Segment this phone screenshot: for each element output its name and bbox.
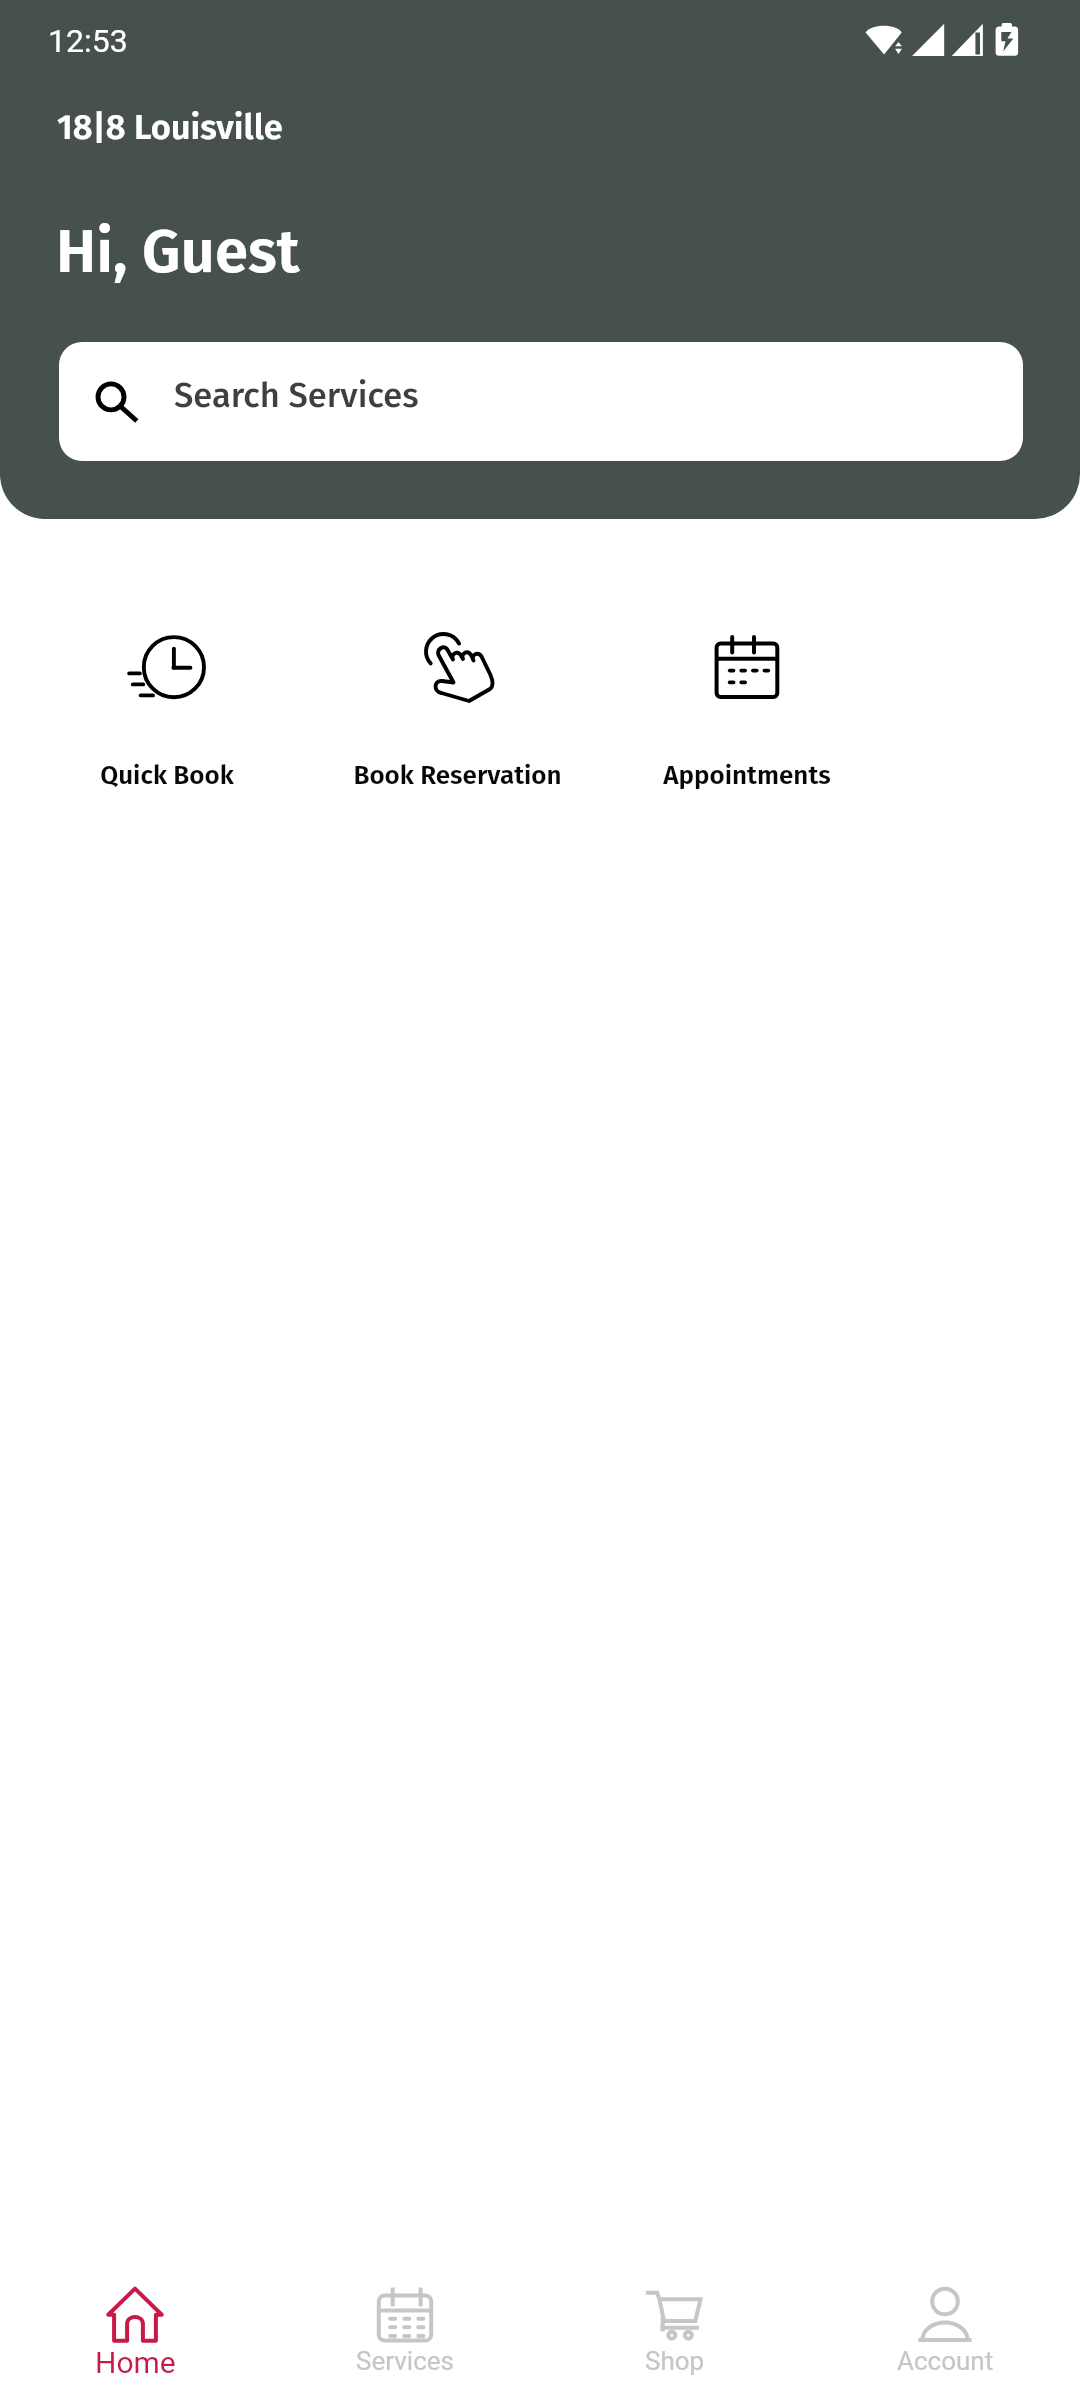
staticText: Home <box>95 2345 176 2380</box>
staticText: Appointments <box>663 760 831 791</box>
staticText: 18|8 Louisville <box>57 107 283 148</box>
button[interactable]: Services <box>270 2240 540 2380</box>
staticText: Shop <box>645 2346 705 2376</box>
staticText: Search Services <box>174 375 419 416</box>
staticText: Hi, Guest <box>56 216 300 288</box>
button[interactable]: Shop <box>540 2240 810 2380</box>
staticText: Book Reservation <box>353 760 562 791</box>
button[interactable]: Book Reservation <box>312 600 602 741</box>
staticText: Services <box>356 2346 454 2376</box>
button[interactable]: Quick Book <box>22 600 312 741</box>
staticText: Quick Book <box>100 760 234 791</box>
button[interactable]: Search Services <box>59 342 1023 461</box>
button[interactable]: Appointments <box>602 600 892 741</box>
button[interactable]: Account <box>810 2240 1080 2380</box>
button[interactable]: Home <box>0 2240 270 2385</box>
staticText: Account <box>897 2346 994 2376</box>
staticText: 12:53 <box>48 22 128 60</box>
